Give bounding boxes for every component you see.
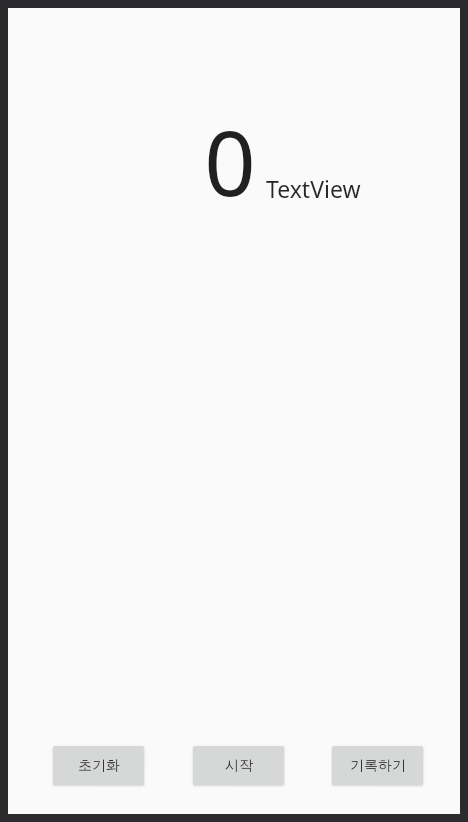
staticText: 기록하기 [350,757,406,775]
staticText: TextView [266,173,361,204]
staticText: 0 [204,100,256,223]
staticText: 시작 [225,757,253,775]
button[interactable]: 초기화 [53,746,144,785]
button[interactable]: 기록하기 [332,746,423,785]
button[interactable]: 시작 [193,746,284,785]
staticText: 초기화 [78,757,120,775]
